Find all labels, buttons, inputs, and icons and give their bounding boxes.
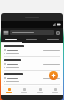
button[interactable]: Home <box>4 86 14 95</box>
button[interactable]: Budget <box>35 86 45 95</box>
button[interactable] <box>1 37 21 42</box>
button[interactable] <box>10 30 54 35</box>
button[interactable]: Menu <box>3 30 9 36</box>
button[interactable] <box>42 37 63 42</box>
button[interactable]: More <box>50 86 60 95</box>
button[interactable] <box>1 71 63 85</box>
button[interactable] <box>1 57 63 71</box>
button[interactable] <box>1 43 63 57</box>
button[interactable] <box>21 37 42 42</box>
button[interactable]: More options <box>55 30 61 36</box>
button[interactable]: Add <box>49 71 58 80</box>
button[interactable]: Reports <box>19 86 29 95</box>
